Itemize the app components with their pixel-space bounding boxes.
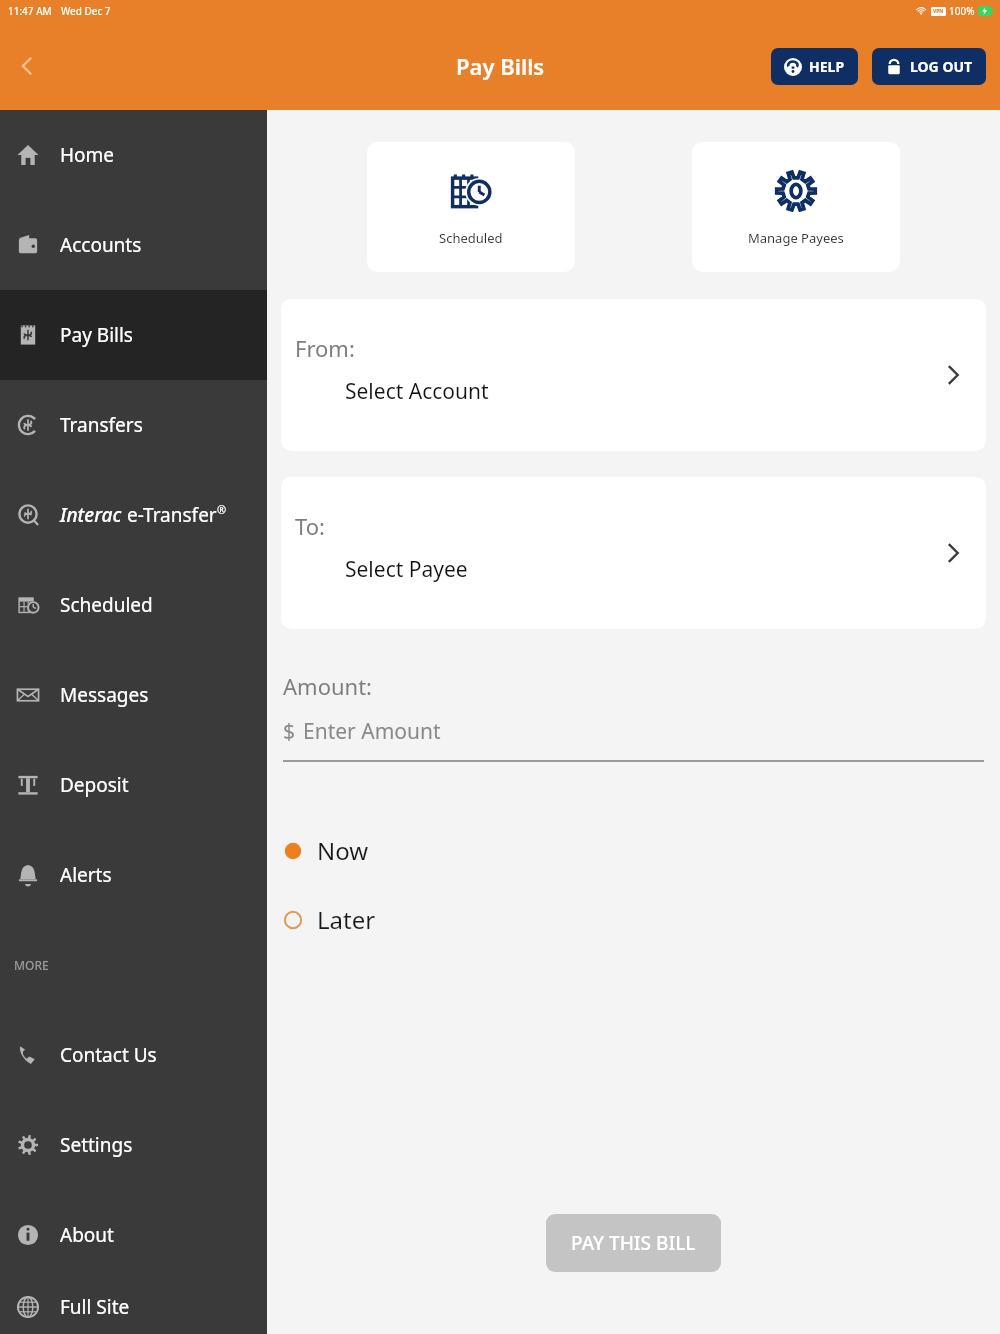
staticText: VPN	[933, 8, 944, 15]
staticText: ®	[217, 502, 227, 517]
button[interactable]: Deposit	[0, 740, 267, 830]
staticText: Enter Amount	[303, 717, 441, 746]
button[interactable]: Later	[267, 899, 1000, 940]
button[interactable]: Messages	[0, 650, 267, 740]
staticText: From:	[295, 333, 355, 363]
staticText: 11:47 AM	[8, 4, 52, 18]
button[interactable]: Manage Payees	[692, 142, 900, 272]
staticText: $	[283, 717, 296, 746]
staticText: Later	[317, 903, 376, 936]
staticText: PAY THIS BILL	[571, 1230, 696, 1256]
staticText: To:	[295, 511, 325, 541]
staticText: 100%	[949, 4, 975, 18]
staticText: Pay Bills	[60, 322, 133, 348]
staticText: LOG OUT	[910, 57, 973, 76]
button[interactable]: Pay Bills	[0, 290, 267, 380]
staticText: Now	[317, 834, 369, 867]
staticText: Interac	[60, 502, 122, 528]
staticText: Full Site	[60, 1294, 130, 1320]
staticText: About	[60, 1222, 114, 1248]
staticText: Amount:	[283, 671, 372, 701]
button[interactable]: Contact Us	[0, 1010, 267, 1100]
staticText: Accounts	[60, 232, 142, 258]
button[interactable]: LOG OUT	[872, 48, 986, 85]
button[interactable]: Transfers	[0, 380, 267, 470]
staticText: Settings	[60, 1132, 133, 1158]
staticText: Wed Dec 7	[61, 4, 111, 18]
staticText: Select Account	[345, 377, 489, 406]
staticText: e-Transfer	[122, 502, 217, 528]
button[interactable]: Accounts	[0, 200, 267, 290]
button[interactable]: Alerts	[0, 830, 267, 920]
button[interactable]: Scheduled	[0, 560, 267, 650]
button[interactable]: Now	[267, 830, 1000, 871]
button[interactable]: About	[0, 1190, 267, 1280]
button[interactable]: Settings	[0, 1100, 267, 1190]
button[interactable]: From:	[281, 299, 986, 451]
button[interactable]: PAY THIS BILL	[546, 1214, 721, 1272]
button[interactable]: Full Site	[0, 1280, 267, 1334]
button[interactable]: Interac	[0, 470, 267, 560]
staticText: Home	[60, 142, 115, 168]
button[interactable]: Scheduled	[367, 142, 575, 272]
staticText: Pay Bills	[456, 51, 545, 81]
staticText: Deposit	[60, 772, 129, 798]
staticText: Scheduled	[439, 229, 503, 247]
staticText: Contact Us	[60, 1042, 157, 1068]
staticText: Transfers	[60, 412, 143, 438]
staticText: Scheduled	[60, 592, 153, 618]
button[interactable]: Home	[0, 110, 267, 200]
staticText: Alerts	[60, 862, 112, 888]
staticText: Manage Payees	[748, 229, 844, 247]
staticText: HELP	[809, 57, 845, 76]
staticText: Messages	[60, 682, 149, 708]
button[interactable]: HELP	[771, 48, 858, 85]
button[interactable]: Back	[0, 22, 56, 110]
staticText: Select Payee	[345, 555, 468, 584]
button[interactable]: To:	[281, 477, 986, 629]
staticText: MORE	[14, 957, 49, 973]
